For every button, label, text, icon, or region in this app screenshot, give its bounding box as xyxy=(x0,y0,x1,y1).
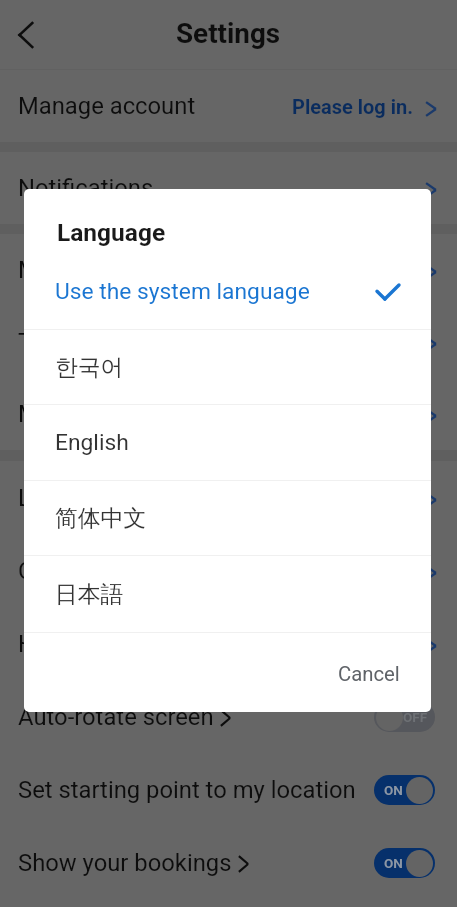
button[interactable]: Map mode xyxy=(0,378,457,450)
staticText: Manage account xyxy=(18,92,196,120)
button[interactable]: Map display xyxy=(0,234,457,306)
staticText: Show your bookings xyxy=(18,849,232,877)
staticText: Language xyxy=(57,218,166,247)
staticText: ON xyxy=(384,855,403,871)
staticText: Check for updates xyxy=(18,557,211,585)
button[interactable]: Set starting point to my location xyxy=(0,753,457,826)
button[interactable]: Switch on xyxy=(374,848,435,878)
button[interactable]: English xyxy=(24,405,431,480)
staticText: English xyxy=(55,429,129,456)
staticText: Use the system language xyxy=(55,278,310,305)
staticText: Cancel xyxy=(338,662,400,686)
staticText: Auto-rotate screen xyxy=(18,703,214,731)
button[interactable]: Switch off xyxy=(374,702,435,732)
staticText: Settings xyxy=(176,17,281,50)
staticText: Help xyxy=(18,630,67,658)
button[interactable]: 한국어 xyxy=(24,330,431,404)
button[interactable]: Text size xyxy=(0,306,457,378)
button[interactable]: Show your bookings xyxy=(0,826,457,899)
staticText: 한국어 xyxy=(55,353,124,382)
staticText: Map mode xyxy=(18,400,132,428)
button[interactable]: Language xyxy=(0,461,457,534)
button[interactable]: Cancel xyxy=(312,648,431,700)
staticText: 日本語 xyxy=(55,580,124,609)
button[interactable]: Back xyxy=(0,9,52,61)
button[interactable]: Notifications xyxy=(0,152,457,224)
staticText: Text size xyxy=(18,328,112,356)
button[interactable]: Check for updates xyxy=(0,534,457,607)
button[interactable]: Help xyxy=(0,607,457,680)
staticText: Language xyxy=(18,484,123,512)
staticText: 简体中文 xyxy=(55,504,147,533)
staticText: ON xyxy=(384,782,403,798)
button[interactable]: Manage account xyxy=(0,70,457,142)
staticText: Map display xyxy=(18,256,146,284)
button[interactable]: Use the system language xyxy=(24,254,431,329)
button[interactable]: Switch on xyxy=(374,775,435,805)
staticText: OFF xyxy=(403,709,428,725)
staticText: Set starting point to my location xyxy=(18,776,356,804)
button[interactable]: 日本語 xyxy=(24,556,431,632)
staticText: Notifications xyxy=(18,174,154,202)
button[interactable]: Auto-rotate screen xyxy=(0,680,457,753)
staticText: Please log in. xyxy=(292,95,414,118)
button[interactable]: 简体中文 xyxy=(24,481,431,555)
